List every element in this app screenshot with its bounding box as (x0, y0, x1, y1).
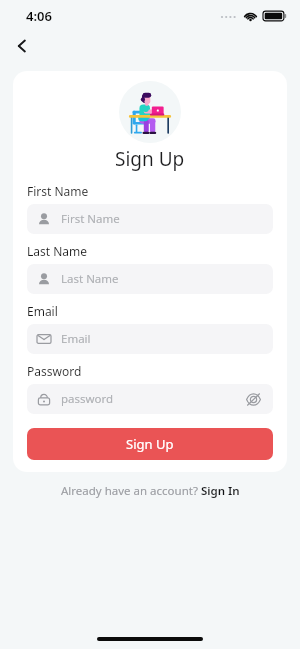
button[interactable]: Back (8, 32, 36, 60)
button[interactable]: password (27, 384, 273, 414)
staticText: 4:06 (26, 7, 52, 25)
staticText: Password (27, 363, 82, 379)
staticText: Sign Up (126, 435, 174, 453)
staticText: Already have an account? (61, 483, 201, 499)
button[interactable]: Already have an account? (0, 483, 300, 499)
staticText: Last Name (61, 271, 119, 287)
staticText: Sign In (201, 483, 240, 499)
button[interactable]: First Name (27, 204, 273, 234)
staticText: Sign Up (115, 146, 185, 172)
staticText: Last Name (27, 243, 88, 259)
staticText: First Name (27, 183, 89, 199)
button[interactable]: Email (27, 324, 273, 354)
staticText: password (61, 391, 114, 407)
staticText: Email (27, 303, 58, 319)
button[interactable]: Show password (243, 389, 263, 409)
staticText: Email (61, 331, 91, 347)
button[interactable]: Sign Up (27, 428, 273, 460)
staticText: First Name (61, 211, 120, 227)
button[interactable]: Last Name (27, 264, 273, 294)
